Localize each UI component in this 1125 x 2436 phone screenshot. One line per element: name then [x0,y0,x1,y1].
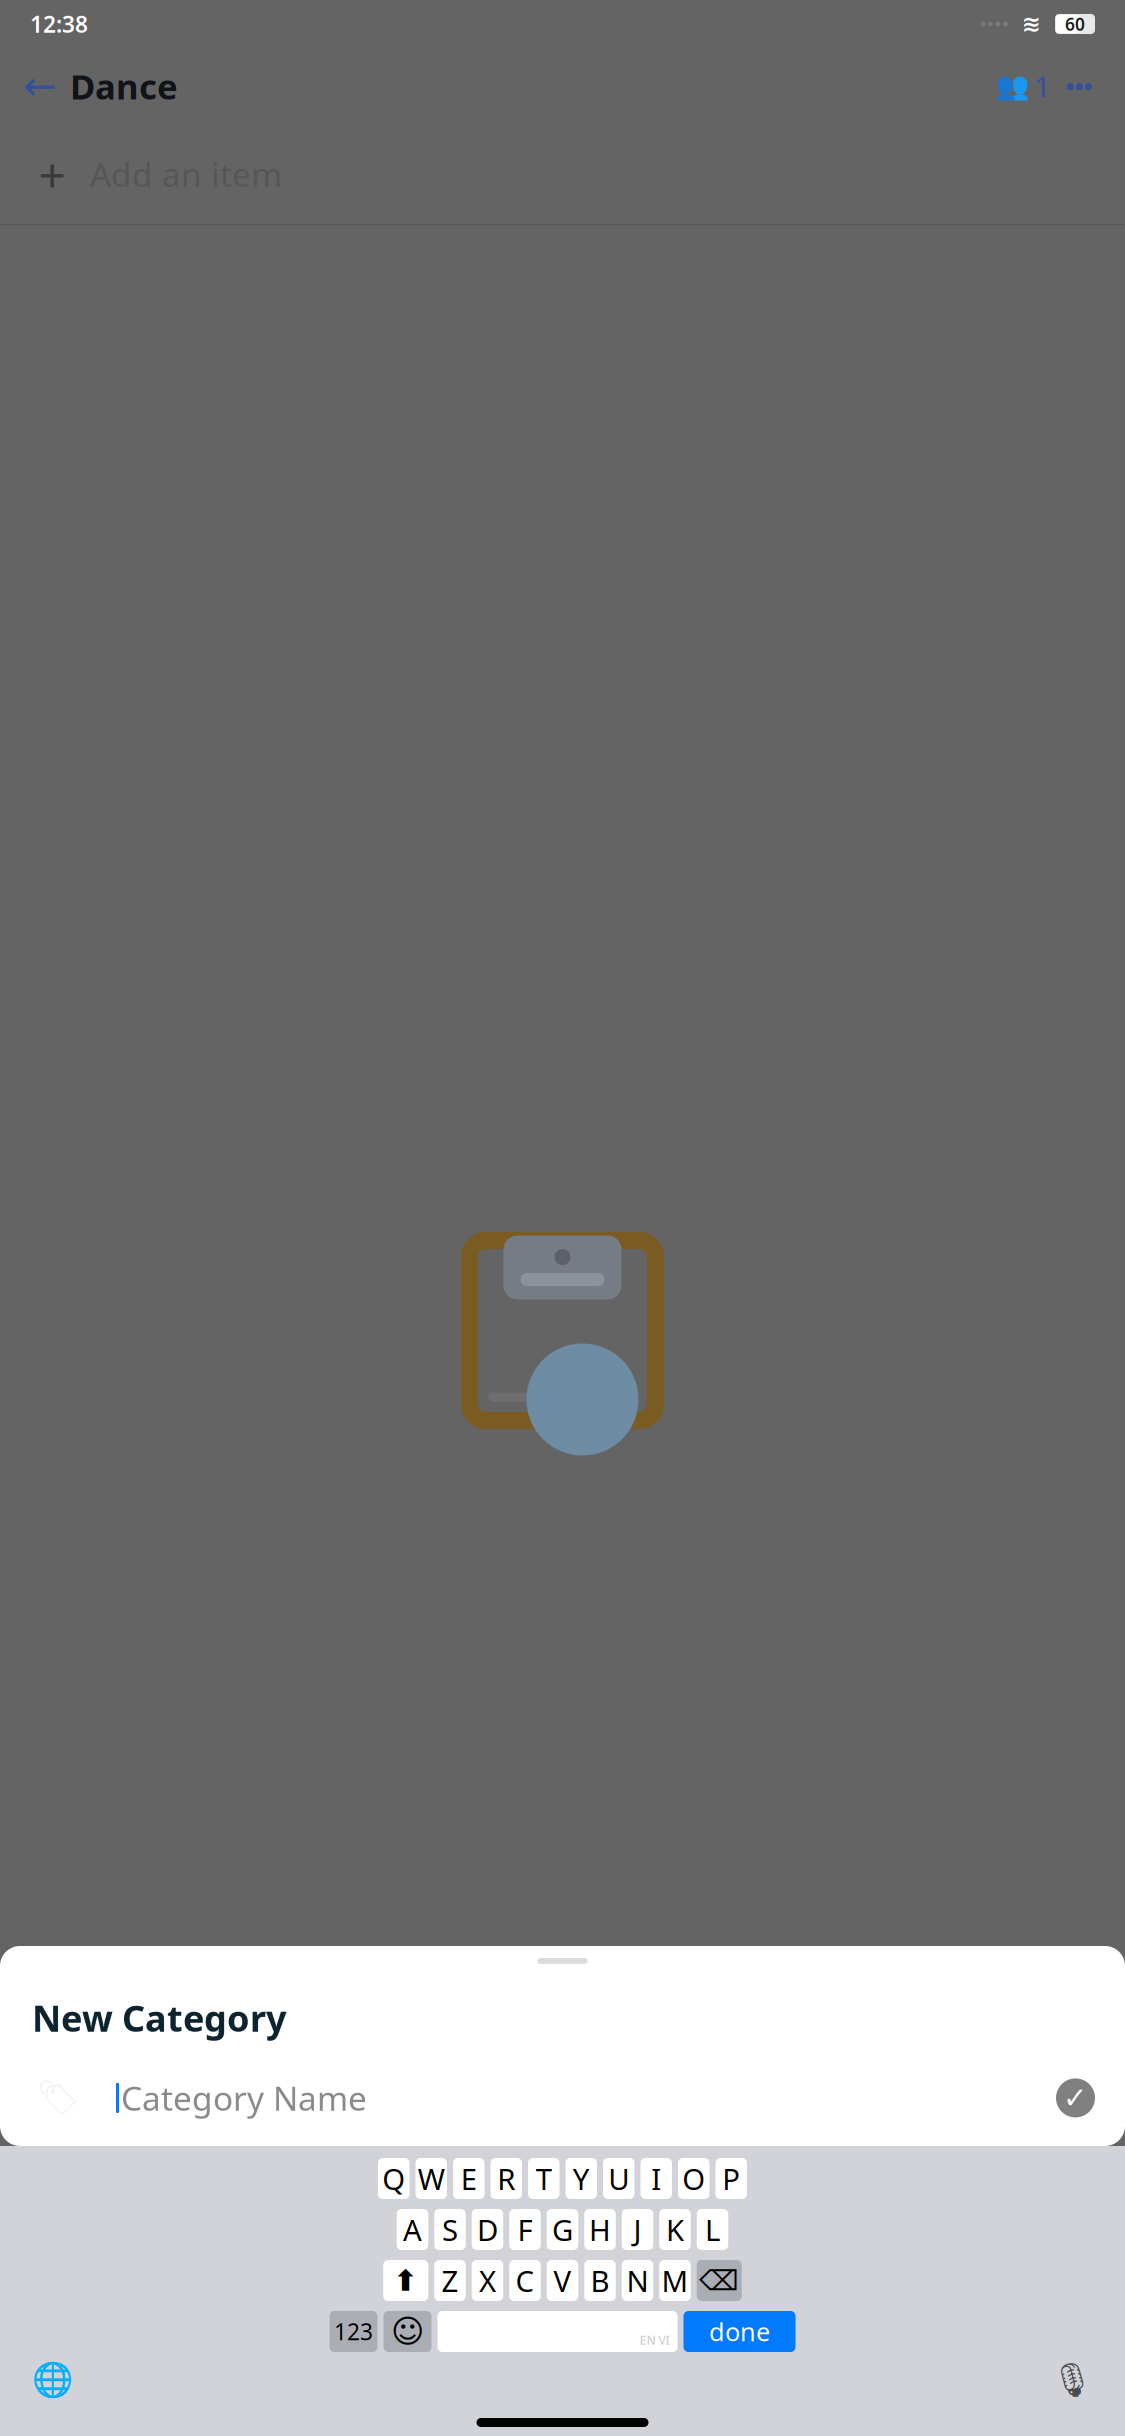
staticText: 60 [1065,12,1085,35]
staticText: + [38,142,65,206]
staticText: R [497,2159,515,2198]
staticText: 🌐 [32,2361,74,2399]
button[interactable]: K [659,2209,691,2250]
button[interactable]: H [584,2209,616,2250]
staticText: Y [573,2159,590,2198]
staticText: D [477,2210,498,2249]
button[interactable]: I [640,2158,672,2199]
staticText: P [722,2159,740,2198]
staticText: W [418,2159,445,2198]
staticText: 🏷 [36,2078,80,2118]
button[interactable]: W [415,2158,447,2199]
button[interactable]: M [659,2260,691,2301]
button[interactable]: E [453,2158,484,2199]
button[interactable]: P [715,2158,747,2199]
staticText: M [661,2261,688,2300]
button[interactable]: J [622,2209,653,2250]
button[interactable]: 123 [329,2311,377,2352]
staticText: Category Name [121,2076,367,2120]
button[interactable]: Q [378,2158,409,2199]
button[interactable]: O [678,2158,709,2199]
staticText: 👥 [996,71,1029,101]
staticText: O [682,2159,705,2198]
staticText: 🎙 [1051,2361,1093,2399]
button[interactable]: Z [434,2260,466,2301]
staticText: ⌫ [699,2265,739,2296]
staticText: N [626,2261,648,2300]
staticText: EN VI [639,2332,669,2348]
button[interactable]: S [434,2209,466,2250]
button[interactable]: Space [437,2311,677,2352]
staticText: ✓ [1063,2081,1088,2115]
staticText: L [705,2210,720,2249]
staticText: Dance [70,63,178,109]
staticText: I [651,2159,661,2198]
staticText: New Category [32,1994,287,2042]
staticText: U [608,2159,629,2198]
staticText: Q [382,2159,405,2198]
button[interactable]: R [490,2158,522,2199]
staticText: ← [23,63,57,109]
button[interactable]: B [584,2260,616,2301]
button[interactable]: D [472,2209,503,2250]
staticText: H [589,2210,611,2249]
staticText: S [442,2210,458,2249]
staticText: done [709,2315,770,2348]
staticText: K [666,2210,684,2249]
button[interactable]: C [509,2260,541,2301]
button[interactable]: A [397,2209,428,2250]
button[interactable]: X [472,2260,503,2301]
button[interactable]: F [509,2209,541,2250]
staticText: T [536,2159,552,2198]
button[interactable]: Confirm [1056,2078,1095,2117]
button[interactable]: done [683,2311,795,2352]
staticText: F [517,2210,532,2249]
staticText: 12:38 [30,9,88,39]
staticText: X [479,2261,496,2300]
button[interactable]: Delete [697,2260,742,2301]
staticText: ≋ [1022,11,1041,37]
staticText: V [553,2261,571,2300]
staticText: E [461,2159,477,2198]
button[interactable]: Shift [383,2260,428,2301]
button[interactable]: G [547,2209,578,2250]
staticText: ••• [1065,70,1092,102]
staticText: J [633,2210,641,2249]
staticText: A [403,2210,422,2249]
button[interactable]: T [528,2158,559,2199]
button[interactable]: N [622,2260,653,2301]
staticText: 123 [334,2316,373,2346]
button[interactable]: Y [565,2158,597,2199]
staticText: ☺ [391,2313,424,2350]
button[interactable]: Emoji [383,2311,431,2352]
button[interactable]: Dictation [1047,2358,1097,2402]
staticText: Add an item [90,152,282,196]
button[interactable]: L [697,2209,728,2250]
button[interactable]: Back [18,64,62,108]
staticText: B [590,2261,609,2300]
button[interactable]: More options [1051,64,1107,108]
button[interactable]: Members [996,64,1051,108]
staticText: ⬆ [393,2264,418,2297]
button[interactable]: Switch keyboard [28,2358,78,2402]
button[interactable]: V [547,2260,578,2301]
staticText: G [552,2210,573,2249]
staticText: 1 [1034,66,1051,105]
staticText: Z [441,2261,458,2300]
button[interactable]: U [603,2158,634,2199]
staticText: C [515,2261,534,2300]
